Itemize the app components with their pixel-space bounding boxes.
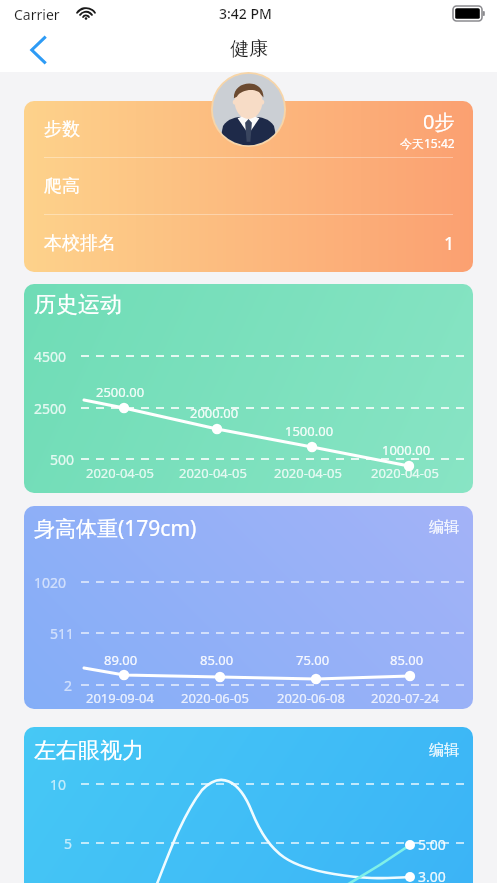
staticText: 75.00	[296, 651, 330, 669]
staticText: 85.00	[390, 651, 424, 669]
staticText: 2020-06-05	[181, 689, 249, 707]
button[interactable]: 爬高	[24, 158, 473, 214]
staticText: 2020-06-08	[277, 689, 345, 707]
button[interactable]: 左右眼视力	[24, 727, 473, 883]
button[interactable]: 本校排名	[24, 215, 473, 271]
staticText: 89.00	[104, 651, 138, 669]
staticText: 4500	[34, 347, 67, 366]
staticText: Carrier	[14, 5, 60, 24]
staticText: 2019-09-04	[86, 689, 154, 707]
staticText: 0步	[423, 108, 455, 135]
staticText: 500	[50, 450, 75, 469]
staticText: 3:42 PM	[219, 4, 272, 23]
staticText: 2020-04-05	[274, 464, 342, 482]
staticText: 5.00	[418, 835, 446, 854]
button[interactable]: 编辑	[421, 733, 467, 768]
staticText: 身高体重(179cm)	[34, 514, 197, 543]
staticText: 2	[64, 676, 73, 695]
staticText: 2500	[34, 399, 67, 418]
staticText: 511	[50, 624, 75, 643]
staticText: 编辑	[429, 741, 459, 760]
staticText: 10	[50, 775, 67, 794]
staticText: 历史运动	[34, 291, 122, 319]
staticText: 本校排名	[44, 232, 116, 255]
staticText: 85.00	[200, 651, 234, 669]
staticText: 2020-04-05	[86, 464, 154, 482]
button[interactable]: 身高体重(179cm)	[24, 506, 473, 709]
button[interactable]: Back	[16, 28, 62, 72]
button[interactable]: 步数	[24, 101, 473, 157]
staticText: 健康	[230, 37, 268, 61]
staticText: 1	[444, 231, 455, 256]
staticText: 左右眼视力	[34, 737, 144, 765]
staticText: 2500.00	[96, 383, 145, 401]
staticText: 今天15:42	[400, 135, 455, 151]
staticText: 编辑	[429, 518, 459, 537]
button[interactable]: 历史运动	[24, 284, 473, 493]
staticText: 1020	[34, 573, 67, 592]
button[interactable]: 编辑	[421, 510, 467, 545]
staticText: 2020-04-05	[179, 464, 247, 482]
staticText: 1000.00	[382, 441, 431, 459]
staticText: 1500.00	[285, 422, 334, 440]
staticText: 2000.00	[190, 404, 239, 422]
staticText: 2020-04-05	[371, 464, 439, 482]
staticText: 爬高	[44, 175, 80, 198]
staticText: 2020-07-24	[371, 689, 439, 707]
staticText: 5	[64, 834, 73, 853]
staticText: 步数	[44, 118, 80, 141]
staticText: 3.00	[418, 867, 446, 883]
